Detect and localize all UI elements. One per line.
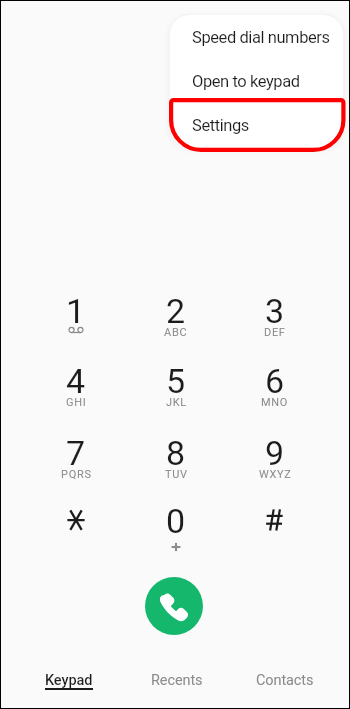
staticText: Keypad: [45, 672, 93, 689]
button[interactable]: 6: [229, 356, 321, 414]
staticText: ABC: [164, 326, 188, 339]
button[interactable]: 5: [130, 356, 222, 414]
staticText: DEF: [264, 326, 286, 339]
button[interactable]: Contacts: [231, 656, 339, 708]
staticText: 2: [166, 291, 186, 331]
button[interactable]: Pound: [229, 496, 321, 554]
staticText: Contacts: [256, 672, 314, 689]
button[interactable]: Open to keypad: [170, 59, 343, 103]
button[interactable]: Keypad: [15, 656, 123, 708]
staticText: WXYZ: [259, 468, 292, 481]
staticText: 3: [265, 291, 285, 331]
staticText: 8: [166, 433, 186, 473]
staticText: 1: [66, 291, 86, 331]
staticText: 9: [265, 433, 285, 473]
staticText: Recents: [151, 672, 203, 689]
button[interactable]: Call: [145, 577, 203, 635]
staticText: 6: [265, 361, 285, 401]
button[interactable]: 0: [130, 496, 222, 554]
staticText: GHI: [66, 396, 87, 409]
staticText: PQRS: [61, 468, 92, 481]
staticText: 4: [66, 361, 86, 401]
button[interactable]: Star: [30, 496, 122, 554]
staticText: Open to keypad: [192, 72, 300, 91]
staticText: TUV: [165, 468, 188, 481]
staticText: 7: [66, 433, 86, 473]
button[interactable]: 7: [30, 428, 122, 486]
button[interactable]: 2: [130, 286, 222, 344]
staticText: JKL: [166, 396, 187, 409]
staticText: 0: [166, 501, 186, 541]
staticText: MNO: [261, 396, 289, 409]
staticText: Settings: [192, 116, 249, 135]
button[interactable]: 8: [130, 428, 222, 486]
button[interactable]: Recents: [123, 656, 231, 708]
button[interactable]: 3: [229, 286, 321, 344]
button[interactable]: Settings: [170, 103, 343, 147]
staticText: Speed dial numbers: [192, 28, 330, 47]
button[interactable]: 4: [30, 356, 122, 414]
staticText: 5: [166, 361, 186, 401]
button[interactable]: 9: [229, 428, 321, 486]
button[interactable]: 1: [30, 286, 122, 344]
button[interactable]: Speed dial numbers: [170, 15, 343, 59]
